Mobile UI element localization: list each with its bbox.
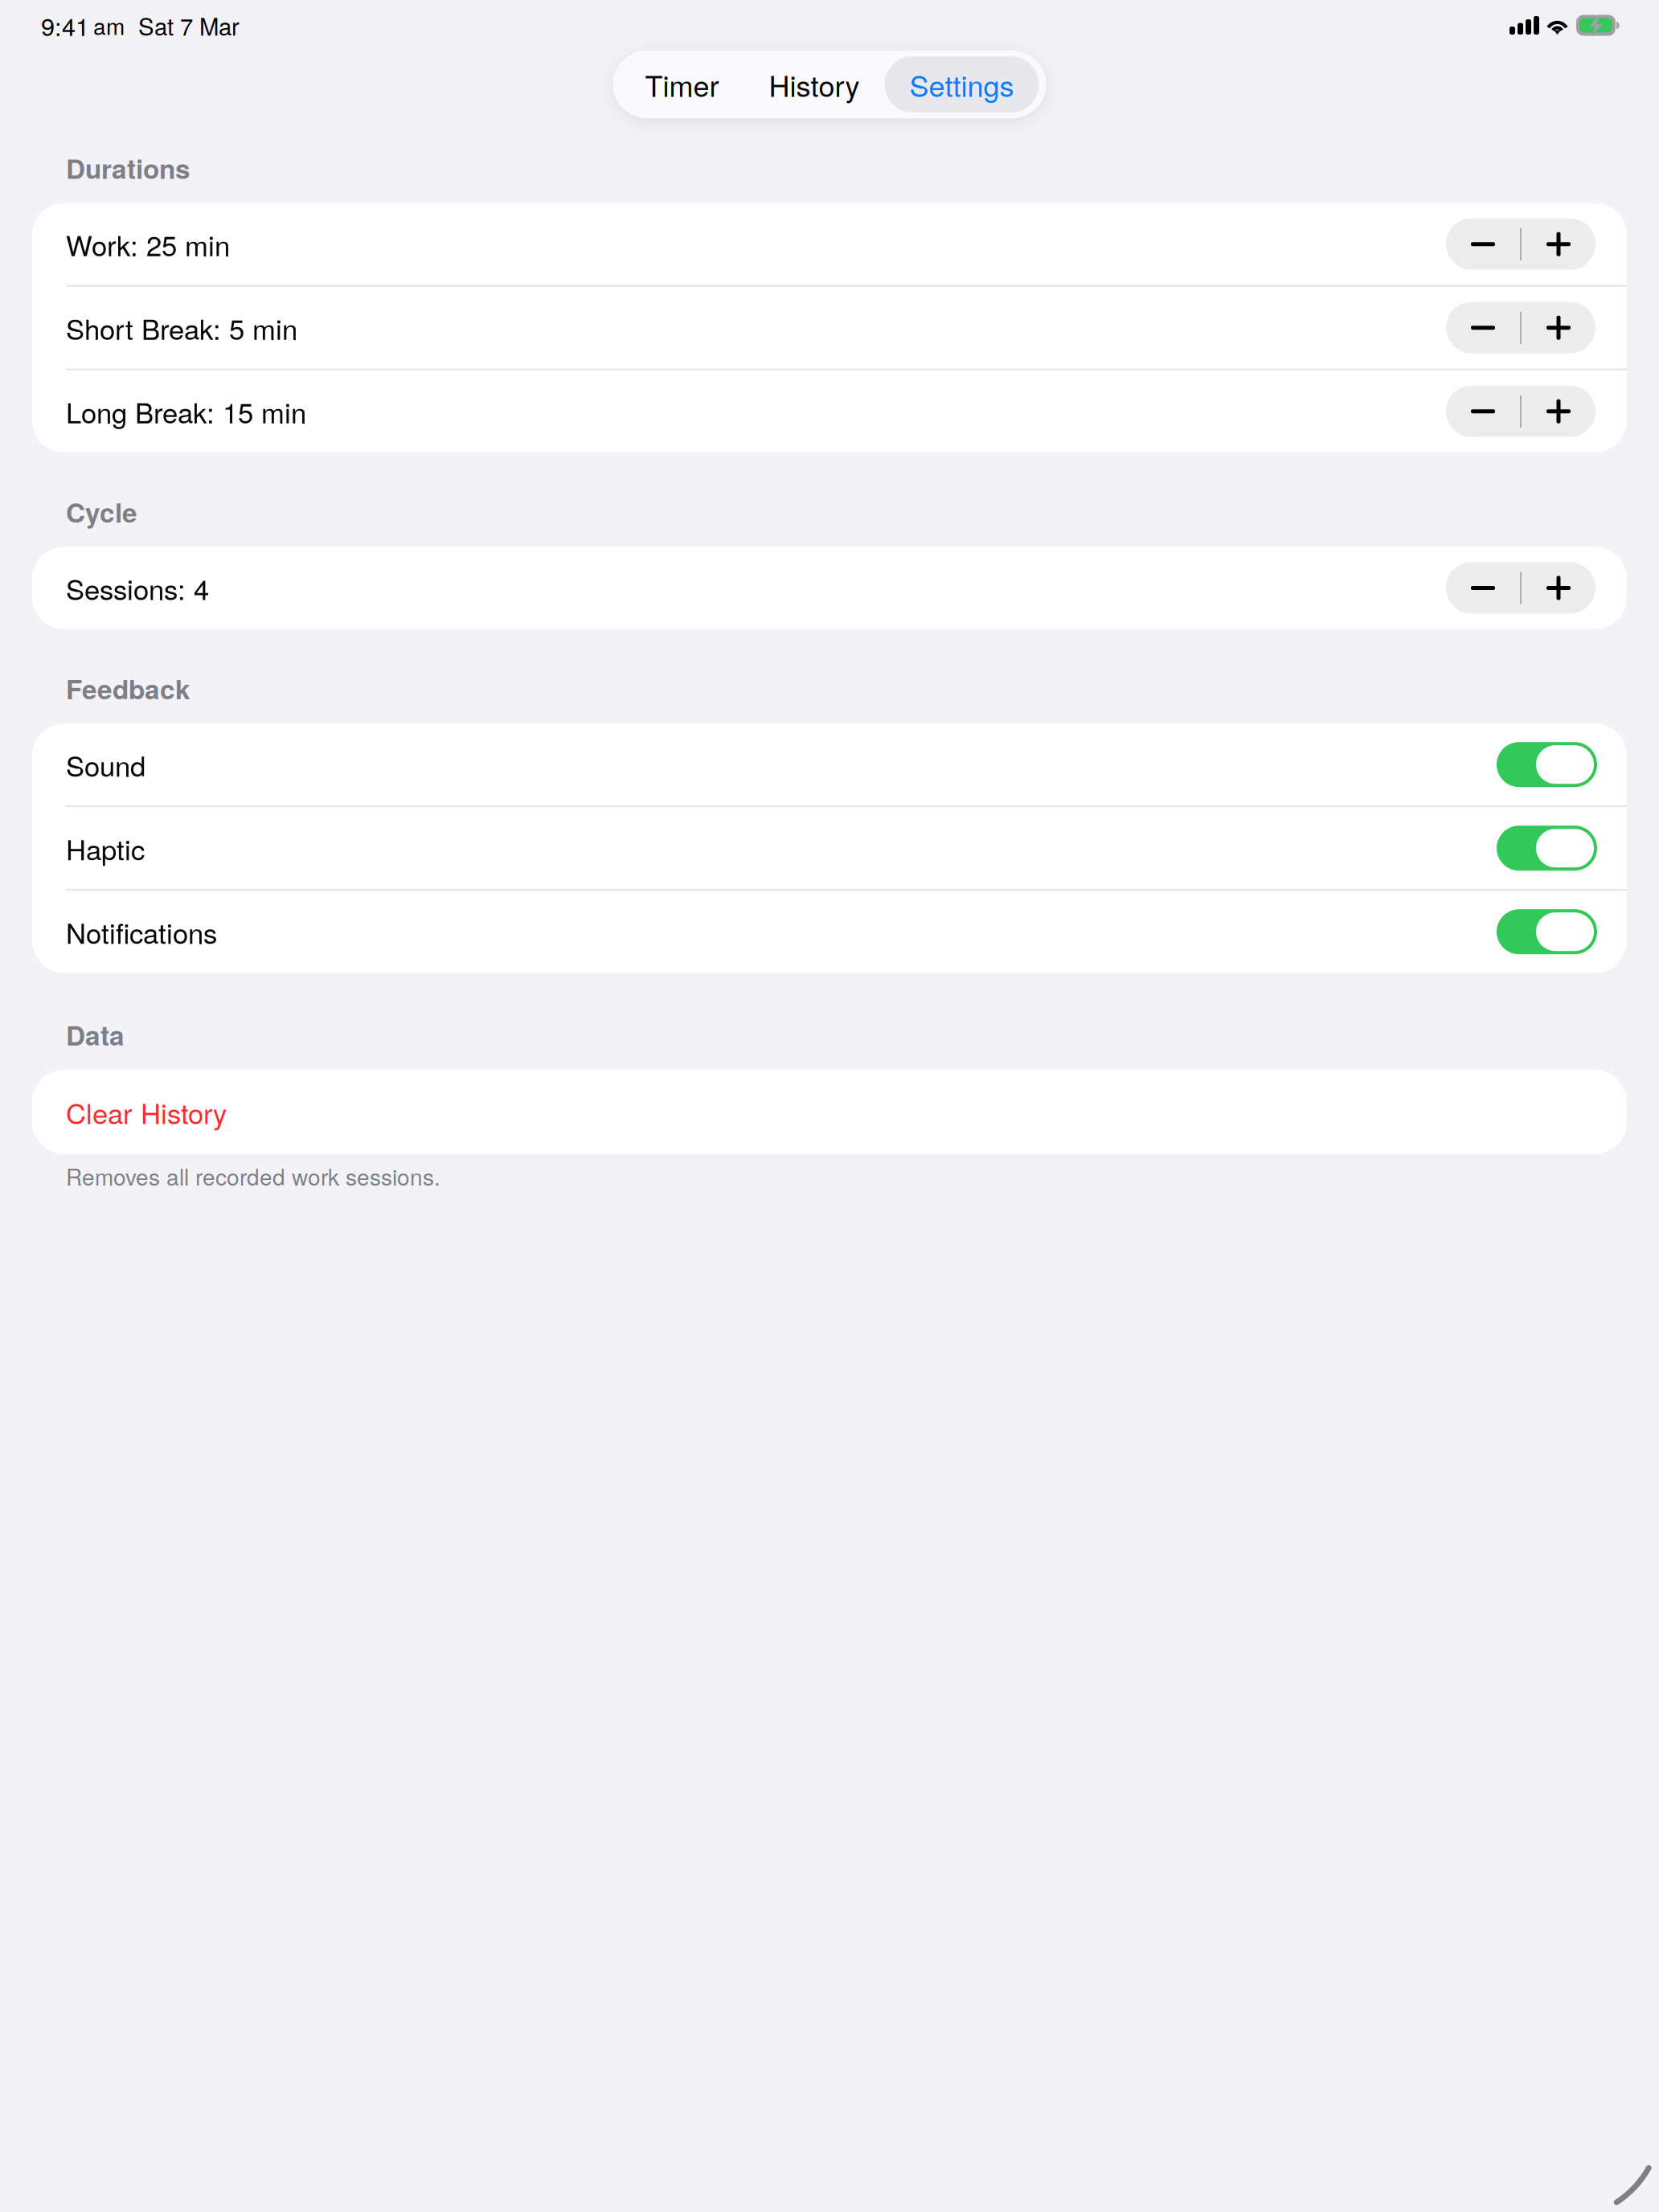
button[interactable]: Sound	[1497, 742, 1597, 787]
button[interactable]: Long Break: 15 min	[32, 370, 1627, 452]
staticText: Notifications	[66, 912, 217, 952]
button[interactable]: Decrease	[1446, 218, 1520, 270]
staticText: Cycle	[66, 492, 137, 531]
staticText: Clear History	[66, 1092, 227, 1132]
staticText: Sat 7 Mar	[138, 8, 240, 42]
button[interactable]: Timer	[620, 56, 744, 113]
button[interactable]: Work: 25 min	[32, 203, 1627, 285]
staticText: Work: 25 min	[66, 224, 230, 264]
button[interactable]: Haptic	[1497, 826, 1597, 871]
button[interactable]: Increase	[1522, 302, 1596, 353]
staticText: Feedback	[66, 669, 190, 707]
button[interactable]: Increase	[1522, 562, 1596, 614]
staticText: am	[93, 9, 125, 41]
staticText: Short Break: 5 min	[66, 308, 297, 348]
staticText: History	[769, 64, 860, 105]
button[interactable]: Notifications	[1497, 909, 1597, 954]
staticText: Long Break: 15 min	[66, 391, 306, 431]
button[interactable]: Increase	[1522, 386, 1596, 437]
staticText: Data	[66, 1015, 125, 1054]
staticText: Sessions: 4	[66, 568, 209, 608]
staticText: Haptic	[66, 828, 145, 868]
button[interactable]: Sessions: 4	[32, 547, 1627, 629]
staticText: Sound	[66, 745, 145, 784]
button[interactable]: Decrease	[1446, 562, 1520, 614]
button[interactable]: Decrease	[1446, 302, 1520, 353]
button[interactable]: Short Break: 5 min	[32, 287, 1627, 369]
button[interactable]: History	[744, 56, 885, 113]
button[interactable]: Increase	[1522, 218, 1596, 270]
button[interactable]: Settings	[885, 56, 1039, 113]
staticText: Timer	[645, 64, 719, 105]
button[interactable]: Decrease	[1446, 386, 1520, 437]
staticText: Durations	[66, 149, 190, 187]
button[interactable]: Clear History	[32, 1070, 1627, 1154]
staticText: Settings	[909, 64, 1014, 105]
staticText: 9:41	[41, 8, 89, 43]
staticText: Removes all recorded work sessions.	[66, 1160, 440, 1192]
